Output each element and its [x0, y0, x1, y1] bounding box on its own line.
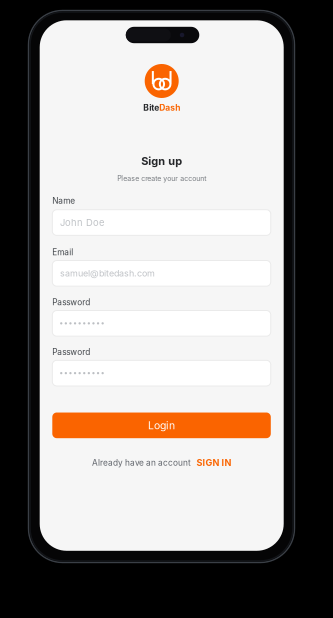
button[interactable] [52, 360, 271, 386]
staticText: Already have an account [92, 458, 191, 468]
staticText: Sign up [141, 154, 182, 167]
staticText: samuel@bitedash.com [60, 268, 155, 279]
staticText: Password [52, 297, 90, 307]
button[interactable]: Login [52, 412, 271, 438]
staticText: Login [148, 419, 175, 432]
button[interactable] [52, 310, 271, 336]
staticText: Password [52, 347, 90, 357]
staticText: Email [52, 247, 73, 257]
staticText: Please create your account [117, 174, 206, 183]
button[interactable]: John Doe [52, 210, 271, 235]
staticText: Bite [143, 102, 159, 113]
staticText: Name [52, 196, 75, 206]
staticText: Dash [159, 102, 180, 113]
staticText: SIGN IN [196, 457, 231, 468]
button[interactable]: samuel@bitedash.com [52, 260, 271, 286]
button[interactable]: SIGN IN [196, 457, 231, 468]
staticText: John Doe [60, 217, 104, 228]
